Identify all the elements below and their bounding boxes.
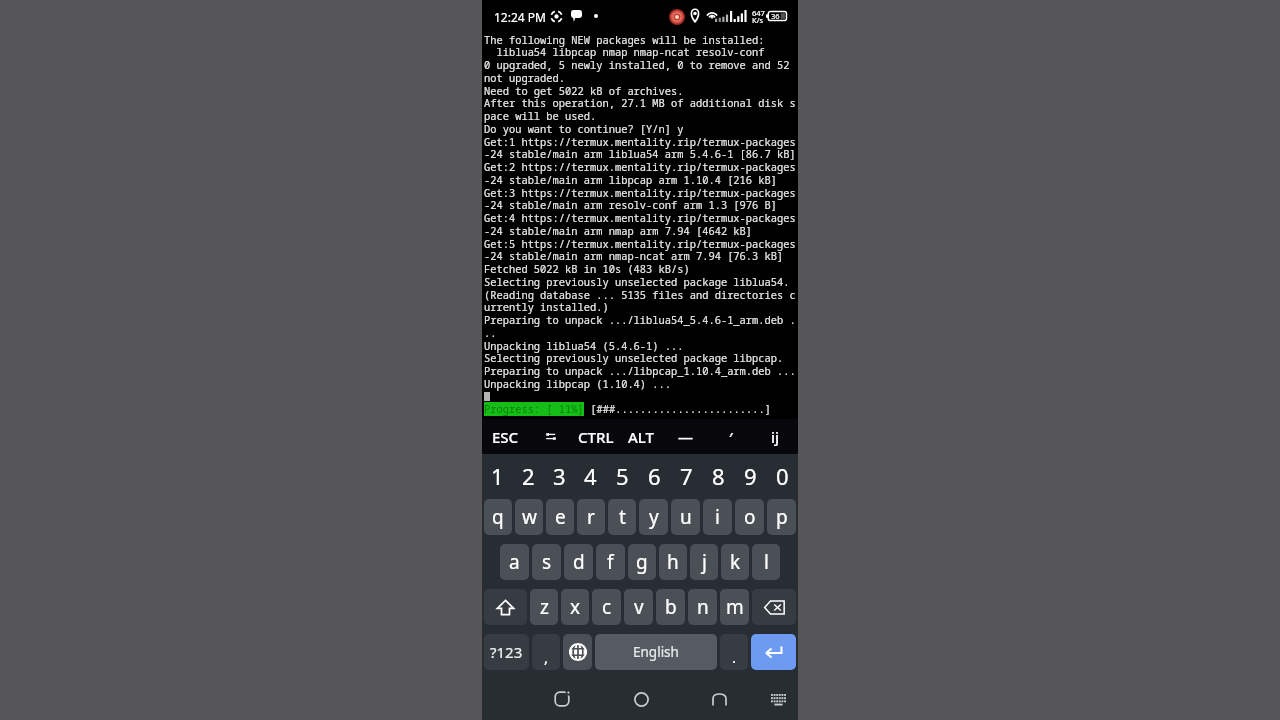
staticText: 3: [553, 461, 566, 491]
button[interactable]: 7: [670, 454, 702, 497]
staticText: -24 stable/main arm nmap arm 7.94 [4642 …: [484, 224, 753, 238]
button[interactable]: o: [735, 499, 764, 535]
staticText: —: [678, 427, 694, 447]
staticText: b: [665, 594, 677, 620]
button[interactable]: r: [577, 499, 605, 535]
button[interactable]: g: [628, 544, 656, 580]
button[interactable]: Recent apps: [544, 681, 580, 717]
staticText: Get:1 https://termux.mentality.rip/termu…: [484, 135, 796, 149]
staticText: Fetched 5022 kB in 10s (483 kB/s): [484, 262, 690, 276]
staticText: 36: [771, 11, 780, 21]
button[interactable]: d: [564, 544, 593, 580]
staticText: liblua54 libpcap nmap nmap-ncat resolv-c…: [484, 45, 765, 59]
staticText: q: [492, 504, 504, 530]
staticText: -24 stable/main arm resolv-conf arm 1.3 …: [484, 198, 778, 212]
button[interactable]: ALT: [618, 419, 663, 454]
button[interactable]: e: [546, 499, 574, 535]
button[interactable]: English: [595, 634, 717, 670]
button[interactable]: p: [767, 499, 796, 535]
staticText: The following NEW packages will be insta…: [484, 33, 765, 47]
staticText: 12:24 PM: [494, 9, 546, 25]
staticText: d: [573, 549, 585, 575]
staticText: After this operation, 27.1 MB of additio…: [484, 96, 796, 110]
button[interactable]: ?123: [484, 634, 529, 670]
button[interactable]: 4: [575, 454, 606, 497]
button[interactable]: v: [624, 589, 653, 625]
button[interactable]: x: [561, 589, 589, 625]
staticText: Unpacking libpcap (1.10.4) ...: [484, 377, 672, 391]
button[interactable]: z: [530, 589, 558, 625]
staticText: ,: [544, 647, 549, 667]
button[interactable]: k: [721, 544, 749, 580]
staticText: .: [732, 647, 737, 667]
button[interactable]: 2: [513, 454, 544, 497]
staticText: CTRL: [578, 427, 614, 447]
staticText: i: [715, 504, 720, 530]
staticText: x: [570, 594, 581, 620]
button[interactable]: c: [592, 589, 621, 625]
staticText: s: [542, 549, 552, 575]
staticText: 1: [491, 461, 504, 491]
button[interactable]: 3: [544, 454, 575, 497]
button[interactable]: 8: [702, 454, 734, 497]
button[interactable]: Terminal output: [482, 31, 798, 419]
staticText: ALT: [628, 427, 654, 447]
button[interactable]: Keyboard: [760, 681, 796, 717]
staticText: ij: [771, 427, 780, 447]
staticText: j: [702, 549, 707, 575]
staticText: n: [697, 594, 709, 620]
staticText: m: [726, 594, 744, 620]
staticText: Get:4 https://termux.mentality.rip/termu…: [484, 211, 796, 225]
staticText: t: [619, 504, 626, 530]
staticText: Do you want to continue? [Y/n] y: [484, 122, 684, 136]
button[interactable]: ,: [532, 634, 560, 670]
button[interactable]: w: [515, 499, 543, 535]
button[interactable]: b: [656, 589, 685, 625]
button[interactable]: Home: [623, 681, 659, 717]
button[interactable]: Back: [701, 681, 737, 717]
button[interactable]: 6: [638, 454, 670, 497]
staticText: Selecting previously unselected package …: [484, 351, 784, 365]
staticText: h: [667, 549, 679, 575]
button[interactable]: —: [663, 419, 708, 454]
button[interactable]: Change language: [563, 634, 592, 670]
button[interactable]: 1: [482, 454, 513, 497]
button[interactable]: m: [720, 589, 749, 625]
button[interactable]: y: [639, 499, 668, 535]
button[interactable]: l: [752, 544, 780, 580]
button[interactable]: n: [688, 589, 717, 625]
button[interactable]: ij: [753, 419, 798, 454]
button[interactable]: 0: [766, 454, 798, 497]
staticText: 4: [584, 461, 597, 491]
button[interactable]: f: [596, 544, 625, 580]
button[interactable]: .: [720, 634, 748, 670]
staticText: g: [636, 549, 648, 575]
button[interactable]: i: [703, 499, 732, 535]
button[interactable]: a: [500, 544, 529, 580]
button[interactable]: ′: [708, 419, 753, 454]
button[interactable]: ESC: [482, 419, 528, 454]
button[interactable]: 9: [734, 454, 766, 497]
staticText: (Reading database ... 5135 files and dir…: [484, 288, 796, 302]
staticText: o: [744, 504, 756, 530]
staticText: -24 stable/main arm libpcap arm 1.10.4 […: [484, 173, 778, 187]
staticText: 6: [648, 461, 661, 491]
button[interactable]: t: [608, 499, 636, 535]
button[interactable]: Enter: [751, 634, 796, 670]
staticText: Get:2 https://termux.mentality.rip/termu…: [484, 160, 796, 174]
button[interactable]: CTRL: [573, 419, 618, 454]
button[interactable]: 5: [606, 454, 638, 497]
button[interactable]: Tab: [528, 419, 573, 454]
button[interactable]: s: [532, 544, 561, 580]
button[interactable]: Shift: [484, 589, 527, 625]
staticText: 0: [776, 461, 789, 491]
button[interactable]: h: [659, 544, 687, 580]
button[interactable]: j: [690, 544, 718, 580]
staticText: Selecting previously unselected package …: [484, 275, 790, 289]
staticText: u: [680, 504, 692, 530]
staticText: c: [602, 594, 612, 620]
staticText: 2: [522, 461, 535, 491]
button[interactable]: Backspace: [752, 589, 796, 625]
button[interactable]: u: [671, 499, 700, 535]
button[interactable]: q: [484, 499, 512, 535]
